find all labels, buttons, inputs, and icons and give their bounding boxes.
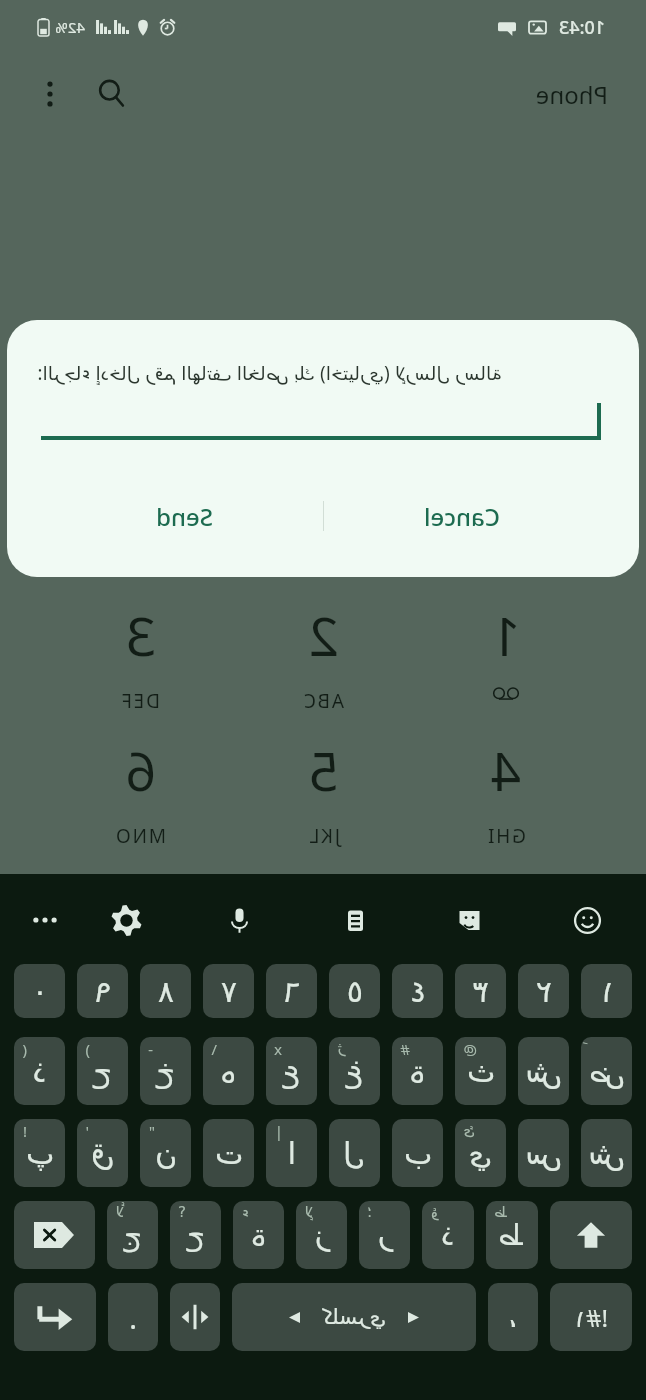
button[interactable]: ط: [486, 1201, 538, 1269]
button[interactable]: ح: [170, 1201, 221, 1269]
button[interactable]: پ: [14, 1119, 65, 1187]
button[interactable]: 5: [232, 739, 415, 874]
button[interactable]: 1: [415, 604, 597, 739]
button[interactable]: ٦: [266, 964, 317, 1018]
button[interactable]: ق: [77, 1119, 128, 1187]
staticText: س: [525, 1136, 562, 1171]
staticText: ئ: [463, 1121, 475, 1138]
button[interactable]: ل: [329, 1119, 380, 1187]
button[interactable]: 3: [49, 604, 232, 739]
staticText: 5: [308, 734, 339, 806]
button[interactable]: ش: [581, 1119, 632, 1187]
button[interactable]: Shift: [550, 1201, 632, 1269]
button[interactable]: Cancel: [401, 491, 522, 542]
staticText: ج: [123, 1218, 142, 1252]
button[interactable]: Clipboard: [330, 894, 382, 946]
button[interactable]: Backspace: [14, 1201, 95, 1269]
staticText: ر: [377, 1218, 392, 1252]
staticText: \: [211, 1039, 217, 1059]
button[interactable]: Search: [88, 70, 136, 118]
staticText: ؤ: [430, 1203, 438, 1220]
staticText: 4: [490, 734, 521, 806]
staticText: ٢: [535, 974, 552, 1009]
button[interactable]: 4: [415, 739, 597, 874]
staticText: 3: [125, 599, 156, 671]
staticText: ي: [468, 1136, 492, 1171]
staticText: ،: [508, 1300, 518, 1334]
staticText: ٧: [220, 974, 237, 1009]
staticText: DEF: [120, 688, 160, 714]
staticText: ش: [525, 1054, 562, 1089]
button[interactable]: ٨: [140, 964, 191, 1018]
staticText: كلسري: [322, 1305, 386, 1329]
button[interactable]: ٢: [518, 964, 569, 1018]
button[interactable]: ه: [203, 1037, 254, 1105]
button[interactable]: ج: [107, 1201, 158, 1269]
staticText: Phone: [535, 78, 608, 111]
button[interactable]: Send: [134, 491, 235, 542]
button[interactable]: ٩: [77, 964, 128, 1018]
button[interactable]: ا: [266, 1119, 317, 1187]
staticText: ذ: [32, 1054, 46, 1089]
staticText: ٠: [31, 974, 48, 1009]
staticText: خ: [155, 1054, 175, 1089]
staticText: MNO: [114, 823, 166, 849]
staticText: (: [22, 1039, 27, 1059]
button[interactable]: غ: [329, 1037, 380, 1105]
staticText: ١: [598, 974, 615, 1009]
button[interactable]: ،: [488, 1283, 538, 1351]
button[interactable]: ٥: [329, 964, 380, 1018]
staticText: پ: [25, 1136, 54, 1171]
button[interactable]: ب: [392, 1119, 443, 1187]
button[interactable]: ذ: [422, 1201, 474, 1269]
staticText: 1: [490, 599, 521, 671]
button[interactable]: ة: [392, 1037, 443, 1105]
button[interactable]: Enter: [14, 1283, 96, 1351]
button[interactable]: ٠: [14, 964, 65, 1018]
button[interactable]: Space: [232, 1283, 476, 1351]
button[interactable]: ع: [266, 1037, 317, 1105]
button[interactable]: س: [518, 1119, 569, 1187]
staticText: ژ: [337, 1039, 345, 1056]
button[interactable]: ي: [455, 1119, 506, 1187]
button[interactable]: 2: [232, 604, 415, 739]
button[interactable]: More options: [26, 70, 74, 118]
button[interactable]: Settings: [101, 894, 153, 946]
button[interactable]: ز: [296, 1201, 347, 1269]
button[interactable]: ٣: [455, 964, 506, 1018]
staticText: ٩: [94, 974, 111, 1009]
button[interactable]: Symbols: [550, 1283, 632, 1351]
button[interactable]: Move cursor: [170, 1283, 220, 1351]
button[interactable]: ث: [455, 1037, 506, 1105]
button[interactable]: ن: [140, 1119, 191, 1187]
button[interactable]: 6: [49, 739, 232, 874]
staticText: ٥: [346, 974, 363, 1009]
staticText: Send: [156, 500, 213, 533]
button[interactable]: ٧: [203, 964, 254, 1018]
staticText: غ: [345, 1054, 363, 1089]
staticText: ': [85, 1121, 89, 1141]
button[interactable]: ذ: [14, 1037, 65, 1105]
staticText: الرجاء إدخال رقم الهاتف الخاص بك (اختيار…: [37, 360, 502, 386]
button[interactable]: ض: [581, 1037, 632, 1105]
button[interactable]: Phone: [535, 78, 608, 111]
staticText: |: [274, 1121, 283, 1141]
button[interactable]: خ: [140, 1037, 191, 1105]
staticText: ن: [154, 1136, 177, 1171]
staticText: ؛: [367, 1203, 372, 1220]
button[interactable]: ت: [203, 1119, 254, 1187]
staticText: ت: [214, 1136, 243, 1171]
button[interactable]: More options: [19, 894, 71, 946]
staticText: ط: [498, 1218, 525, 1252]
button[interactable]: .: [108, 1283, 158, 1351]
button[interactable]: Emoji: [562, 894, 614, 946]
button[interactable]: ش: [518, 1037, 569, 1105]
button[interactable]: ر: [359, 1201, 410, 1269]
button[interactable]: ة: [233, 1201, 284, 1269]
button[interactable]: ١: [581, 964, 632, 1018]
button[interactable]: ح: [77, 1037, 128, 1105]
staticText: Cancel: [423, 500, 500, 533]
button[interactable]: Voice input: [214, 894, 266, 946]
button[interactable]: Stickers: [444, 894, 496, 946]
button[interactable]: ٤: [392, 964, 443, 1018]
